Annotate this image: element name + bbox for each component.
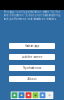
staticText: Try a hack now <box>23 66 41 70</box>
button[interactable]: About <box>9 76 55 82</box>
button[interactable]: Hack an app <box>9 43 55 49</box>
button[interactable]: Try a hack now <box>9 65 55 71</box>
staticText: About <box>27 77 36 81</box>
staticText: Hack an app <box>24 44 39 48</box>
staticText: Lock the screen <box>21 55 42 59</box>
staticText: This app is only a simulation made for f… <box>3 10 60 21</box>
button[interactable]: Advertisement <box>11 91 53 99</box>
button[interactable]: Lock the screen <box>9 54 55 60</box>
